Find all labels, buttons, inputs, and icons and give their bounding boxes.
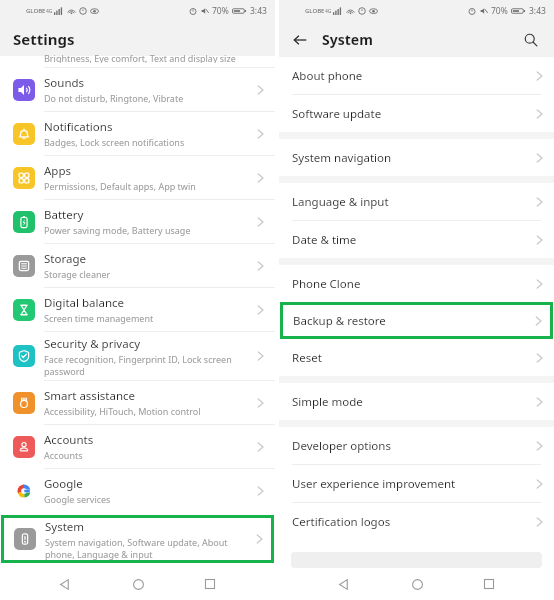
staticText: Permissions, Default apps, App twin [44, 180, 196, 192]
staticText: Certification logos [292, 514, 536, 530]
button[interactable]: Back [331, 571, 357, 597]
staticText: 4G [325, 8, 332, 15]
staticText: GLOBE [26, 7, 46, 15]
staticText: System [45, 519, 85, 535]
staticText: System [322, 30, 373, 49]
staticText: Date & time [292, 232, 536, 248]
staticText: password [44, 365, 85, 377]
button[interactable]: Reset [279, 339, 554, 376]
button[interactable]: Battery [0, 200, 275, 243]
staticText: Digital balance [44, 295, 125, 311]
staticText: System navigation [292, 150, 536, 166]
staticText: Screen time management [44, 312, 154, 324]
staticText: Badges, Lock screen notifications [44, 136, 185, 148]
staticText: 4G [46, 8, 53, 15]
staticText: Accounts [44, 449, 83, 461]
button[interactable]: Backup & restore [280, 302, 553, 339]
button[interactable]: Google [0, 469, 275, 512]
staticText: Smart assistance [44, 388, 136, 404]
staticText: Accounts [44, 432, 94, 448]
staticText: Phone Clone [292, 276, 536, 292]
button[interactable]: Back [52, 571, 78, 597]
button[interactable]: Accounts [0, 425, 275, 468]
staticText: Apps [44, 163, 72, 179]
button[interactable]: Smart assistance [0, 381, 275, 424]
staticText: Google [44, 476, 83, 492]
staticText: Simple mode [292, 394, 536, 410]
staticText: GLOBE [305, 7, 325, 15]
staticText: Settings [13, 29, 75, 49]
button[interactable]: Recent apps [476, 571, 502, 597]
staticText: 3:43 [250, 5, 267, 17]
button[interactable]: Sounds [0, 68, 275, 111]
button[interactable]: Simple mode [279, 383, 554, 420]
button[interactable]: Software update [279, 95, 554, 132]
button[interactable]: Phone Clone [279, 265, 554, 302]
staticText: Backup & restore [293, 313, 535, 329]
staticText: User experience improvement [292, 476, 536, 492]
button[interactable]: Notifications [0, 112, 275, 155]
button[interactable]: Digital balance [0, 288, 275, 331]
staticText: Battery [44, 207, 84, 223]
button[interactable]: Back [288, 28, 312, 52]
button[interactable]: Home [404, 571, 430, 597]
button[interactable]: System [1, 515, 274, 563]
staticText: Security & privacy [44, 336, 141, 352]
staticText: 70% [212, 5, 229, 17]
staticText: Brightness, Eye comfort, Text and displa… [44, 52, 236, 63]
button[interactable]: Search [519, 28, 543, 52]
button[interactable]: Date & time [279, 221, 554, 258]
button[interactable]: Language & input [279, 183, 554, 220]
staticText: About phone [292, 68, 536, 84]
button[interactable]: Developer options [279, 427, 554, 464]
staticText: System navigation, Software update, Abou… [45, 536, 228, 548]
button[interactable]: Certification logos [279, 503, 554, 540]
button[interactable]: User experience improvement [279, 465, 554, 502]
staticText: Language & input [292, 194, 536, 210]
button[interactable]: Home [125, 571, 151, 597]
button[interactable]: System navigation [279, 139, 554, 176]
button[interactable]: Security & privacy [0, 332, 275, 380]
staticText: Storage cleaner [44, 268, 111, 280]
staticText: Do not disturb, Ringtone, Vibrate [44, 92, 184, 104]
staticText: Developer options [292, 438, 536, 454]
staticText: Software update [292, 106, 536, 122]
staticText: 70% [491, 5, 508, 17]
staticText: Face recognition, Fingerprint ID, Lock s… [44, 353, 232, 365]
staticText: Notifications [44, 119, 113, 135]
staticText: Reset [292, 350, 536, 366]
button[interactable]: Storage [0, 244, 275, 287]
staticText: Storage [44, 251, 86, 267]
button[interactable]: About phone [279, 57, 554, 94]
staticText: Google services [44, 493, 111, 505]
staticText: phone, Language & input [45, 548, 153, 560]
staticText: Power saving mode, Battery usage [44, 224, 191, 236]
staticText: Accessibility, HiTouch, Motion control [44, 405, 201, 417]
button[interactable]: Apps [0, 156, 275, 199]
staticText: Sounds [44, 75, 85, 91]
staticText: 3:43 [529, 5, 546, 17]
button[interactable]: Recent apps [197, 571, 223, 597]
